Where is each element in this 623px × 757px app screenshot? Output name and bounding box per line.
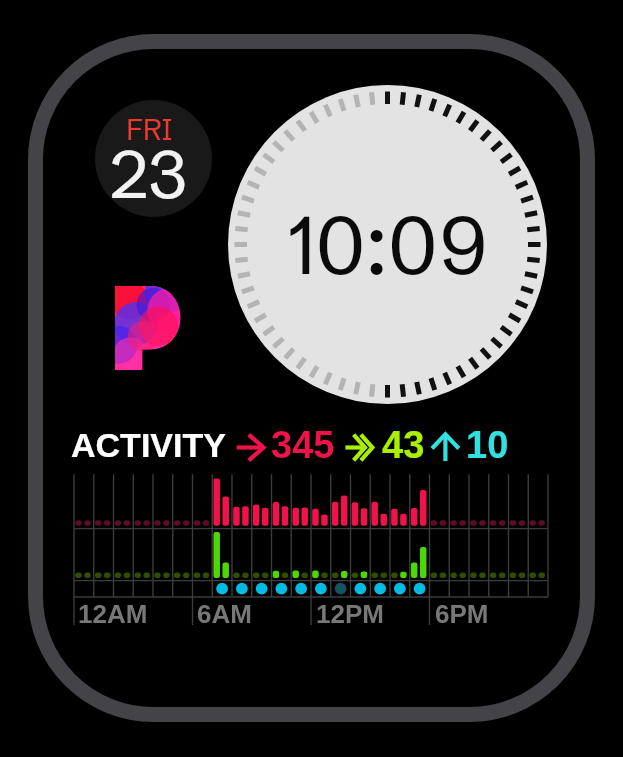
staticText: 10:09 bbox=[288, 195, 488, 295]
button[interactable]: FRI bbox=[95, 100, 212, 217]
button[interactable]: ACTIVITY bbox=[70, 430, 515, 466]
staticText: ACTIVITY bbox=[71, 426, 226, 462]
staticText: 6PM bbox=[435, 599, 489, 628]
staticText: 23 bbox=[110, 133, 188, 216]
staticText: 12PM bbox=[316, 599, 384, 628]
staticText: FRI bbox=[126, 111, 173, 148]
staticText: 12AM bbox=[78, 599, 148, 628]
button[interactable]: Pandora bbox=[115, 286, 185, 370]
staticText: 6AM bbox=[197, 599, 252, 628]
staticText: 10 bbox=[466, 424, 509, 460]
staticText: 43 bbox=[382, 424, 425, 460]
staticText: 345 bbox=[271, 424, 335, 460]
button[interactable]: 10:09 bbox=[228, 85, 547, 404]
